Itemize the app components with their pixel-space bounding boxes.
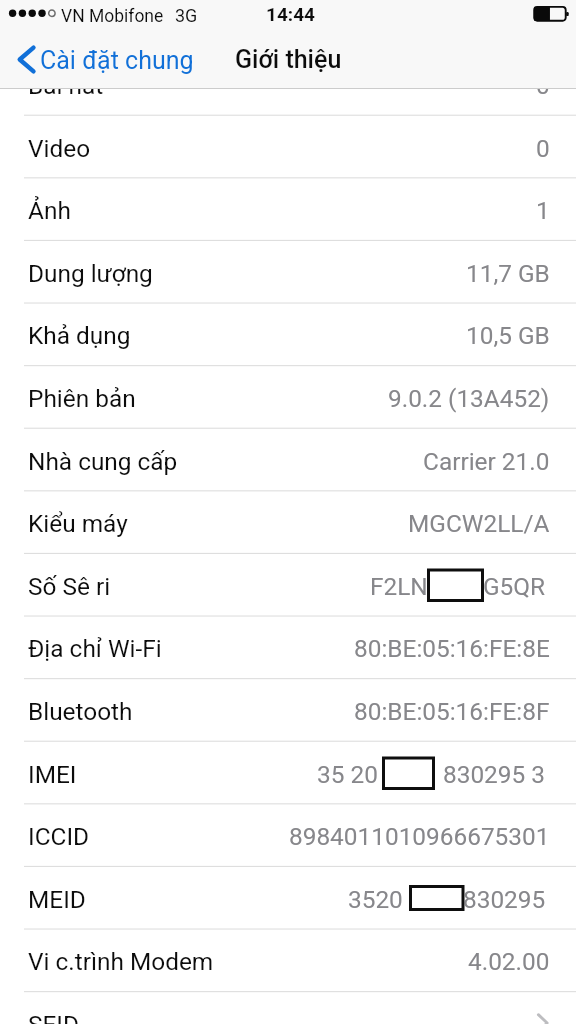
staticText: 8984011010966675301 (289, 822, 550, 851)
staticText: Carrier 21.0 (423, 447, 550, 476)
button[interactable]: Dung lượng (0, 240, 576, 303)
button[interactable]: Địa chỉ Wi-Fi (0, 615, 576, 678)
staticText: Khả dụng (28, 321, 131, 350)
staticText: 10,5 GB (466, 321, 550, 350)
button[interactable]: Video (0, 115, 576, 178)
staticText: 830295 (463, 885, 546, 914)
staticText: Bài hát (28, 71, 104, 100)
staticText: Video (28, 134, 91, 163)
staticText: ICCID (28, 822, 90, 851)
staticText: SEID (28, 1010, 79, 1024)
staticText: Địa chỉ Wi-Fi (28, 634, 162, 663)
staticText: Vi c.trình Modem (28, 947, 214, 976)
button[interactable]: ICCID (0, 803, 576, 866)
staticText: 4.02.00 (468, 947, 550, 976)
button[interactable]: Bluetooth (0, 678, 576, 741)
button[interactable]: Kiểu máy (0, 490, 576, 553)
button[interactable]: MEID (0, 866, 576, 929)
staticText: MEID (28, 885, 86, 914)
staticText: 35 20 (317, 760, 378, 789)
button[interactable]: Ảnh (0, 177, 576, 240)
button[interactable]: Số Sê ri (0, 553, 576, 616)
staticText: Bluetooth (28, 697, 133, 726)
staticText: 0 (536, 134, 550, 163)
button[interactable]: Khả dụng (0, 302, 576, 365)
button[interactable]: Phiên bản (0, 365, 576, 428)
other: Back (13, 43, 37, 77)
button[interactable]: IMEI (0, 741, 576, 804)
staticText: 80:BE:05:16:FE:8F (354, 697, 550, 726)
staticText: Giới thiệu (235, 45, 342, 74)
staticText: Nhà cung cấp (28, 447, 178, 476)
staticText: 830295 3 (443, 760, 546, 789)
staticText: 14:44 (266, 3, 315, 25)
button[interactable]: Bài hát (0, 52, 576, 115)
staticText: 3520 (348, 885, 403, 914)
staticText: Dung lượng (28, 259, 153, 288)
staticText: 0 (536, 71, 550, 100)
staticText: 3G (175, 5, 198, 26)
staticText: 80:BE:05:16:FE:8E (354, 634, 550, 663)
staticText: Kiểu máy (28, 509, 128, 538)
button[interactable]: Nhà cung cấp (0, 428, 576, 491)
staticText: Số Sê ri (28, 572, 111, 601)
staticText: G5QR (483, 572, 546, 601)
button[interactable]: Vi c.trình Modem (0, 928, 576, 991)
staticText: VN Mobifone (61, 6, 164, 27)
staticText: 9.0.2 (13A452) (388, 384, 550, 413)
button[interactable]: Back (0, 37, 204, 83)
staticText: MGCW2LL/A (408, 509, 550, 538)
staticText: Phiên bản (28, 384, 136, 413)
staticText: 1 (536, 196, 550, 225)
staticText: Cài đặt chung (40, 46, 194, 75)
button[interactable]: SEID (0, 991, 576, 1024)
staticText: Ảnh (28, 196, 71, 225)
other: Open SEID (536, 1012, 549, 1024)
staticText: F2LN (370, 572, 428, 601)
staticText: 11,7 GB (466, 259, 550, 288)
staticText: IMEI (28, 760, 77, 789)
